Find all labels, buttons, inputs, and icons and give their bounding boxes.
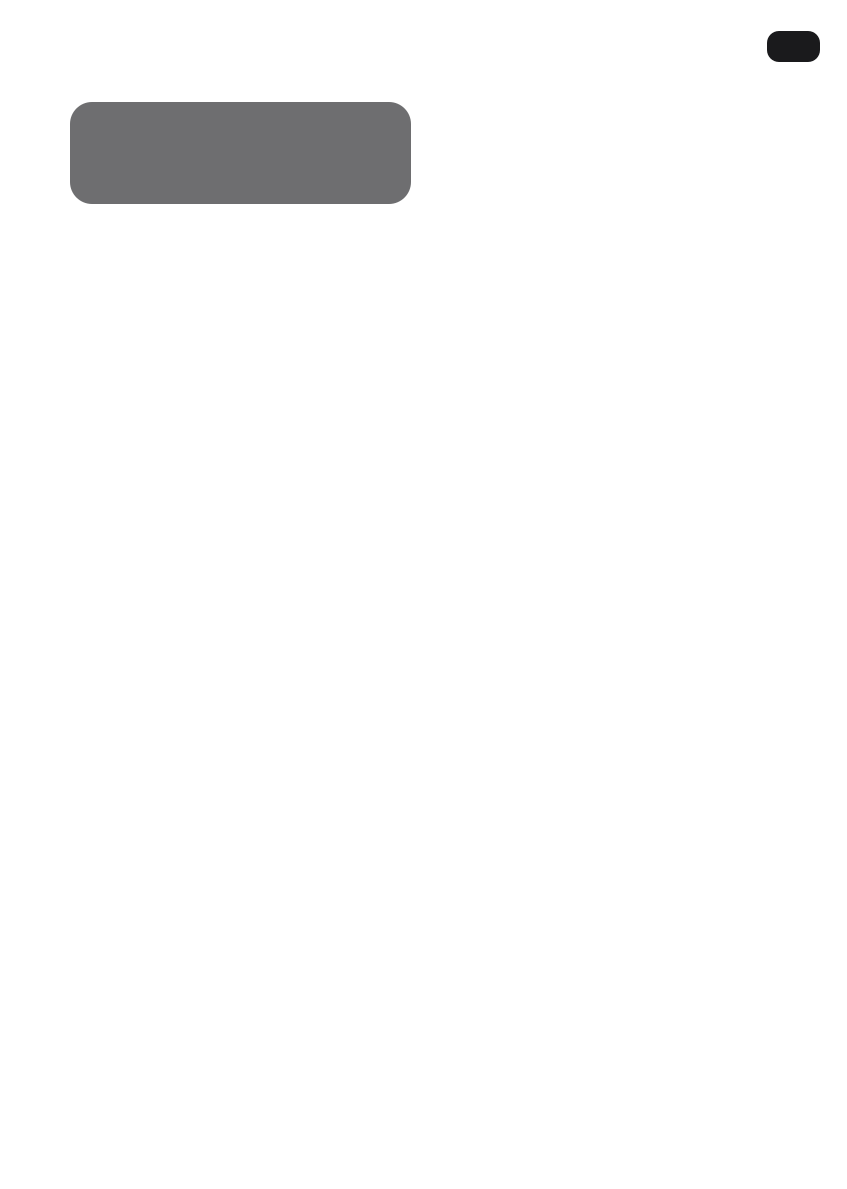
button[interactable]: Done	[767, 31, 820, 62]
button[interactable]: Card	[70, 102, 411, 204]
